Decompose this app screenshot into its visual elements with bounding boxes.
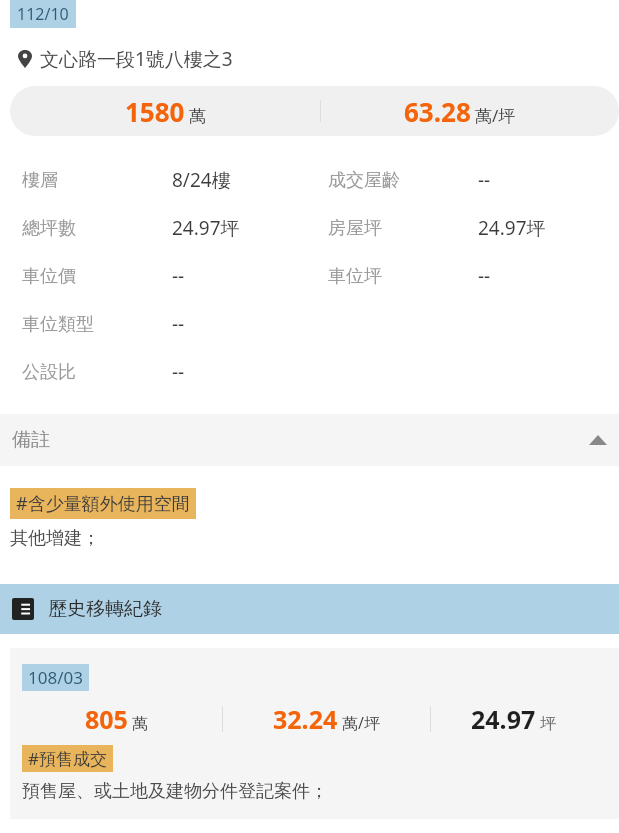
staticText: 萬 <box>132 714 148 734</box>
staticText: 樓層 <box>22 169 58 192</box>
staticText: 805 <box>85 702 128 736</box>
other: Location <box>18 50 32 68</box>
staticText: 24.97坪 <box>172 215 240 241</box>
staticText: 63.28 <box>404 94 471 129</box>
staticText: 萬/坪 <box>342 712 380 734</box>
staticText: -- <box>172 359 185 385</box>
staticText: 公設比 <box>22 361 76 384</box>
staticText: 24.97坪 <box>478 215 546 241</box>
button[interactable]: 車位類型 <box>0 300 619 348</box>
staticText: 車位價 <box>22 265 76 288</box>
button[interactable]: Location <box>18 46 619 72</box>
staticText: 萬/坪 <box>475 104 516 127</box>
staticText: #預售成交 <box>28 747 107 770</box>
staticText: -- <box>172 263 185 289</box>
staticText: -- <box>478 167 491 193</box>
staticText: -- <box>172 311 185 337</box>
other: History records <box>12 598 34 620</box>
staticText: 萬 <box>189 106 206 127</box>
button[interactable]: 1580 <box>10 86 619 136</box>
staticText: 文心路一段1號八樓之3 <box>40 46 233 72</box>
button[interactable]: #含少量額外使用空間 <box>16 491 190 516</box>
staticText: 歷史移轉紀錄 <box>48 597 162 621</box>
staticText: 32.24 <box>273 702 338 736</box>
button[interactable]: 車位價 <box>0 252 619 300</box>
staticText: 24.97 <box>471 702 536 736</box>
staticText: 成交屋齡 <box>328 169 400 192</box>
button[interactable]: 公設比 <box>0 348 619 396</box>
button[interactable]: 總坪數 <box>0 204 619 252</box>
staticText: 108/03 <box>28 666 83 689</box>
staticText: 預售屋、或土地及建物分件登記案件； <box>22 780 328 803</box>
staticText: 1580 <box>125 94 185 129</box>
other: Collapse <box>589 435 607 445</box>
staticText: 總坪數 <box>22 217 76 240</box>
button[interactable]: 樓層 <box>0 156 619 204</box>
staticText: 房屋坪 <box>328 217 382 240</box>
button[interactable]: 108/03 <box>10 648 619 819</box>
staticText: 坪 <box>540 714 556 734</box>
staticText: 其他增建； <box>10 527 100 550</box>
button[interactable]: History records <box>0 584 619 634</box>
staticText: 112/10 <box>17 3 69 25</box>
staticText: -- <box>478 263 491 289</box>
staticText: #含少量額外使用空間 <box>16 491 190 516</box>
button[interactable]: 備註 <box>0 414 619 466</box>
staticText: 車位類型 <box>22 313 94 336</box>
staticText: 8/24樓 <box>172 167 231 193</box>
staticText: 車位坪 <box>328 265 382 288</box>
staticText: 備註 <box>12 428 50 452</box>
